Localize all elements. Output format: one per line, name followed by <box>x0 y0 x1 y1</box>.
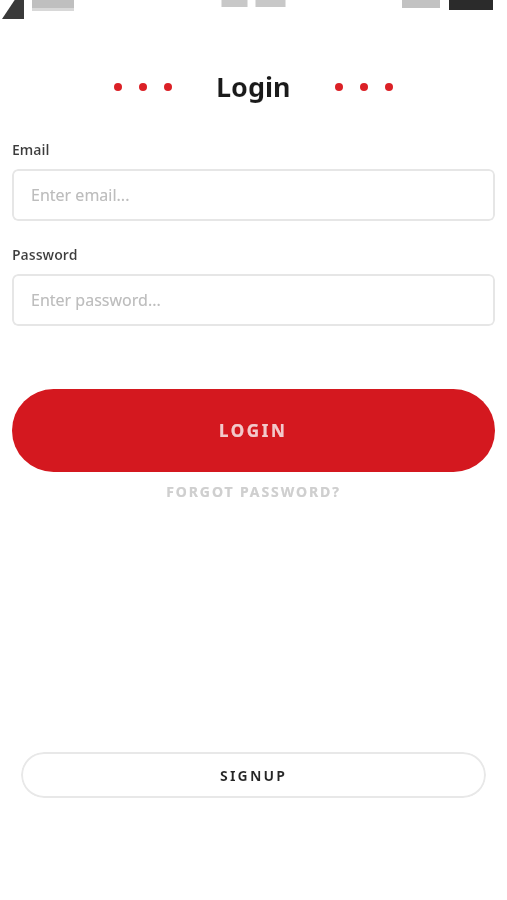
staticText: Password <box>12 245 78 264</box>
staticText: Enter password... <box>31 289 161 311</box>
staticText: FORGOT PASSWORD? <box>166 482 341 501</box>
staticText: LOGIN <box>219 419 288 442</box>
button[interactable]: SIGNUP <box>21 752 486 798</box>
staticText: Enter email... <box>31 184 130 206</box>
button[interactable]: Enter email... <box>12 169 495 221</box>
button[interactable]: FORGOT PASSWORD? <box>0 482 507 501</box>
staticText: SIGNUP <box>220 766 288 785</box>
staticText: Login <box>216 68 291 105</box>
staticText: Email <box>12 140 50 159</box>
button[interactable]: LOGIN <box>12 389 495 472</box>
button[interactable]: Enter password... <box>12 274 495 326</box>
